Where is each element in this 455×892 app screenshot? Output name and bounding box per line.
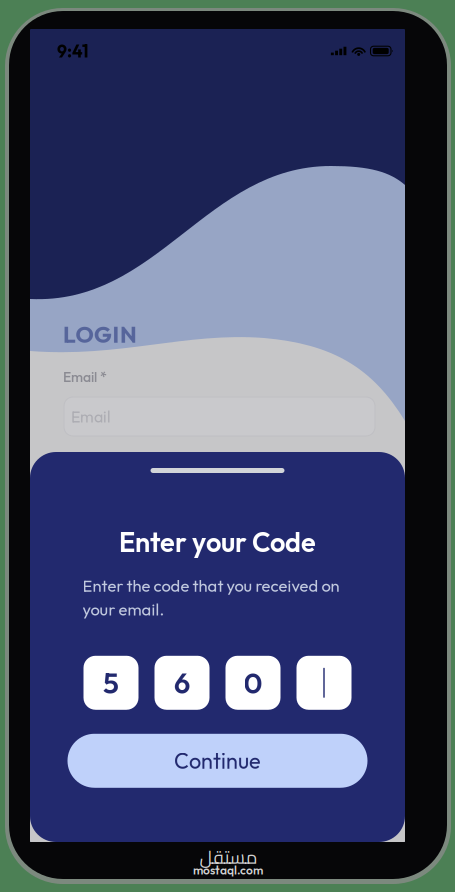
staticText: Continue xyxy=(174,747,261,774)
staticText: 5 xyxy=(103,665,119,701)
button[interactable]: Digit 5 xyxy=(83,656,138,710)
staticText: مستقل xyxy=(199,839,257,874)
staticText: Email * xyxy=(63,368,107,386)
staticText: Email xyxy=(71,406,111,427)
staticText: 6 xyxy=(174,665,190,701)
button[interactable]: Continue xyxy=(67,734,367,788)
staticText: LOGIN xyxy=(63,320,137,349)
staticText: Enter the code that you received on your… xyxy=(82,575,339,620)
staticText: 9:41 xyxy=(57,40,89,62)
staticText: Enter your Code xyxy=(119,525,316,559)
staticText: mostaql.com xyxy=(193,862,263,877)
button[interactable]: Digit 0 xyxy=(225,656,280,710)
staticText: 0 xyxy=(243,665,262,701)
button[interactable]: Code entry field xyxy=(296,656,351,710)
button[interactable]: Digit 6 xyxy=(154,656,209,710)
